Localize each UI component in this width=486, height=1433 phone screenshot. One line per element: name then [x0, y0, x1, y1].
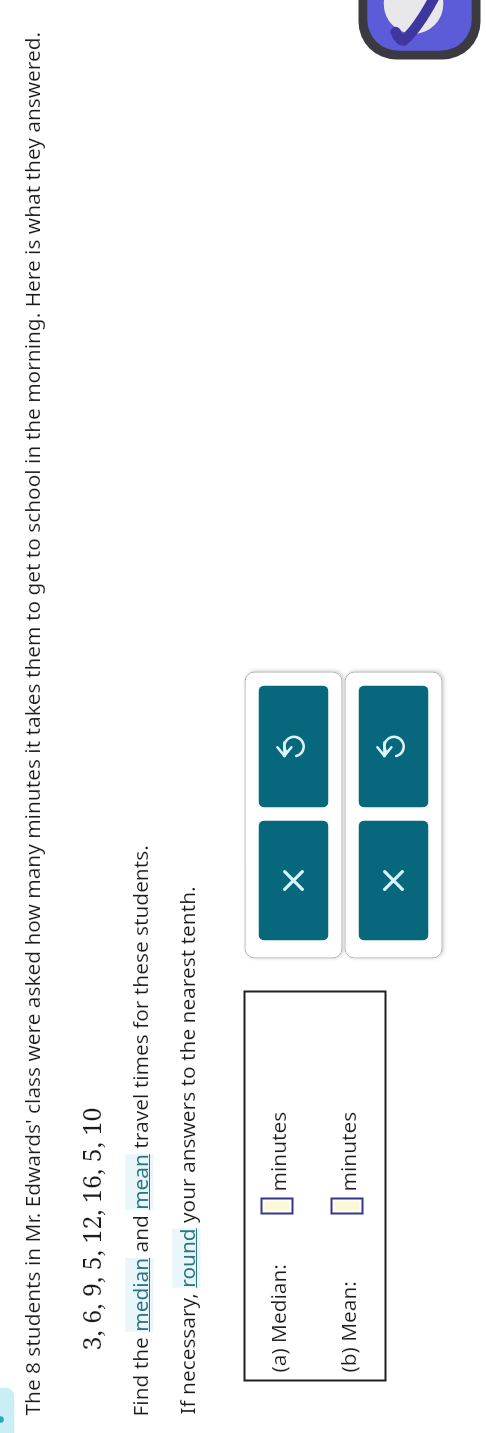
staticText: (a) Median:	[263, 1263, 291, 1372]
button[interactable]: Answer box	[332, 1199, 361, 1212]
staticText: (b) Mean:	[333, 1280, 361, 1372]
button[interactable]: Clear	[258, 820, 328, 940]
staticText: Find the median and mean travel times fo…	[125, 844, 153, 1416]
button[interactable]: Undo	[358, 685, 428, 807]
button[interactable]: Answer box	[262, 1199, 291, 1212]
staticText: 3, 6, 9, 5, 12, 16, 5, 10	[73, 1107, 107, 1350]
staticText: minutes	[333, 1111, 361, 1191]
button[interactable]: Clear	[358, 820, 428, 940]
staticText: If necessary, round your answers to the …	[172, 885, 200, 1414]
staticText: The 8 students in Mr. Edwards' class wer…	[17, 31, 45, 1415]
button[interactable]: Undo	[258, 685, 328, 807]
staticText: minutes	[263, 1111, 291, 1191]
